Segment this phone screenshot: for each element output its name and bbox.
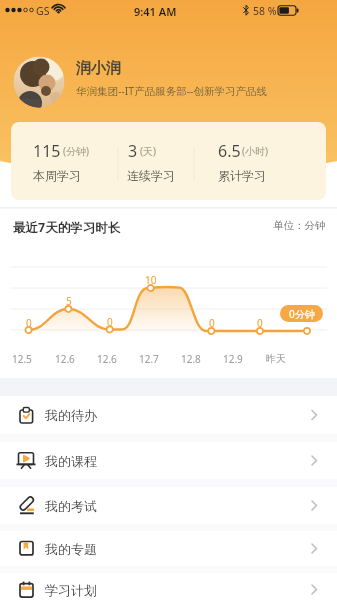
button[interactable]: 0分钟 xyxy=(280,305,323,322)
staticText: 0 xyxy=(26,316,32,330)
staticText: (小时) xyxy=(242,144,268,158)
staticText: 我的考试 xyxy=(45,498,97,514)
button[interactable] xyxy=(0,442,337,479)
button[interactable] xyxy=(0,396,337,434)
staticText: 累计学习 xyxy=(218,168,266,183)
staticText: 12.7 xyxy=(139,352,159,366)
staticText: 12.5 xyxy=(12,352,32,366)
staticText: (天) xyxy=(140,144,156,158)
staticText: 12.9 xyxy=(223,352,243,366)
staticText: 12.6 xyxy=(97,352,117,366)
staticText: 本周学习 xyxy=(33,168,81,183)
staticText: 华润集团--IT产品服务部--创新学习产品线 xyxy=(76,84,267,98)
staticText: 0 xyxy=(257,316,263,330)
staticText: 3 xyxy=(128,140,138,162)
staticText: 12.6 xyxy=(55,352,75,366)
staticText: 连续学习 xyxy=(127,168,175,183)
staticText: 9:41 AM xyxy=(134,4,177,19)
staticText: 0分钟 xyxy=(289,307,315,321)
staticText: 58 % xyxy=(253,4,277,18)
staticText: 我的专题 xyxy=(45,541,97,557)
staticText: 0 xyxy=(209,316,215,330)
staticText: 6.5 xyxy=(218,140,241,162)
staticText: 我的待办 xyxy=(45,407,97,423)
staticText: GS xyxy=(36,4,50,18)
staticText: 润小润 xyxy=(76,59,121,78)
button[interactable] xyxy=(0,487,337,524)
staticText: 昨天 xyxy=(266,352,286,365)
staticText: 我的课程 xyxy=(45,453,97,469)
staticText: 最近7天的学习时长 xyxy=(13,219,121,236)
staticText: 0 xyxy=(107,315,113,329)
staticText: 5 xyxy=(66,294,72,308)
staticText: 单位：分钟 xyxy=(273,219,326,232)
staticText: 12.8 xyxy=(181,352,201,366)
staticText: 10 xyxy=(145,273,157,287)
button[interactable] xyxy=(0,573,337,600)
button[interactable] xyxy=(0,531,337,566)
staticText: 学习计划 xyxy=(45,582,97,598)
staticText: (分钟) xyxy=(63,144,89,158)
button[interactable] xyxy=(11,122,326,200)
staticText: 115 xyxy=(33,140,61,162)
